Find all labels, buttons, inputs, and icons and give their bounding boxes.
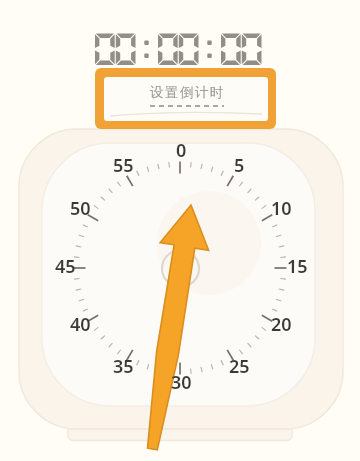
staticText: 30 [171,370,192,394]
staticText: 35 [113,354,134,378]
staticText: 0 [176,138,187,162]
staticText: 20 [271,312,292,336]
staticText: 50 [70,196,91,220]
staticText: 设置倒计时 [149,84,224,101]
staticText: 45 [55,254,76,278]
staticText: 10 [271,196,292,220]
staticText: 55 [113,153,134,177]
staticText: 15 [287,254,308,278]
staticText: 5 [234,153,245,177]
staticText: 25 [229,354,250,378]
staticText: 40 [70,312,91,336]
button[interactable]: 设置倒计时 [95,68,276,129]
